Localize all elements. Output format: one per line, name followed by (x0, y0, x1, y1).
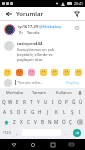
button[interactable]: Voice input (76, 88, 83, 97)
button[interactable]: X (19, 118, 24, 126)
button[interactable]: I (77, 108, 83, 116)
staticText: @hkkkabey (39, 24, 62, 30)
button[interactable]: A (2, 108, 7, 116)
button[interactable]: Filter (72, 9, 81, 18)
button[interactable]: W (8, 98, 13, 106)
button[interactable]: iyi1617-29 (0, 21, 85, 38)
staticText: P (65, 99, 68, 105)
button[interactable]: G (30, 108, 35, 116)
staticText: , (16, 130, 18, 136)
button[interactable]: Z (12, 118, 17, 126)
button[interactable]: E (15, 98, 20, 106)
staticText: tastepen444 (17, 41, 43, 47)
staticText: Ü (79, 99, 83, 105)
button[interactable]: K (53, 108, 59, 116)
button[interactable]: Like (73, 24, 81, 32)
button[interactable]: P (64, 98, 69, 106)
staticText: I (52, 99, 54, 105)
staticText: 20:41 (74, 1, 83, 6)
staticText: O (58, 99, 62, 105)
staticText: D (17, 109, 21, 115)
button[interactable]: Hide keyboard (66, 139, 77, 150)
staticText: Ğ (72, 99, 76, 105)
staticText: Tamam (32, 90, 46, 95)
button[interactable]: Shift (2, 118, 10, 126)
button[interactable]: L (61, 108, 67, 116)
button[interactable]: Ç (68, 118, 73, 126)
staticText: Kullanıcı (56, 90, 72, 95)
staticText: I (79, 109, 81, 115)
staticText: T (30, 99, 33, 105)
staticText: Ö (62, 119, 66, 125)
button[interactable]: O (57, 98, 62, 106)
staticText: iyi1617-29 (18, 24, 39, 30)
button[interactable]: cry (74, 68, 82, 76)
button[interactable]: Tamam (26, 88, 51, 97)
button[interactable]: smile (39, 68, 47, 76)
button[interactable]: R (22, 98, 27, 106)
button[interactable]: J (45, 108, 51, 116)
staticText: M (54, 119, 59, 125)
staticText: H (38, 109, 42, 115)
staticText: S (10, 109, 13, 115)
staticText: Z (13, 119, 16, 125)
button[interactable]: Back (4, 9, 13, 18)
staticText: N (48, 119, 52, 125)
staticText: Sonuçlarınızı en çok (17, 47, 55, 52)
button[interactable]: V (33, 118, 38, 126)
button[interactable]: fire (15, 68, 23, 76)
button[interactable]: B (40, 118, 45, 126)
button[interactable]: D (16, 108, 21, 116)
button[interactable]: Ş (69, 108, 75, 116)
button[interactable]: F (23, 108, 28, 116)
staticText: Yorum ekle... (18, 80, 44, 86)
button[interactable]: U (43, 98, 48, 106)
button[interactable]: C (26, 118, 31, 126)
staticText: Yorumlar (16, 10, 44, 18)
staticText: Q (2, 99, 6, 105)
button[interactable]: Recents (47, 139, 58, 150)
staticText: X (20, 119, 23, 125)
button[interactable]: H (37, 108, 43, 116)
staticText: L (63, 109, 66, 115)
button[interactable]: Merhaba (2, 88, 26, 97)
staticText: paylaşım ittar (17, 57, 43, 62)
button[interactable]: T (29, 98, 34, 106)
staticText: C (27, 119, 30, 125)
button[interactable]: Ö (61, 118, 66, 126)
button[interactable]: grin (3, 68, 11, 76)
staticText: U (44, 99, 48, 105)
button[interactable]: shock (62, 68, 70, 76)
button[interactable]: Back (8, 139, 19, 150)
button[interactable]: Enter (71, 128, 83, 137)
staticText: R (23, 99, 26, 105)
button[interactable]: N (47, 118, 52, 126)
button[interactable]: Kullanıcı (51, 88, 76, 97)
staticText: F (24, 109, 27, 115)
button[interactable]: S (9, 108, 14, 116)
button[interactable]: Ğ (71, 98, 76, 106)
button[interactable]: I (50, 98, 55, 106)
staticText: Paylaş (66, 80, 80, 86)
button[interactable]: tastepen444 (0, 38, 85, 66)
button[interactable]: Backspace (75, 118, 83, 126)
button[interactable]: , (14, 128, 20, 137)
button[interactable]: Y (36, 98, 41, 106)
button[interactable]: blossom (27, 68, 35, 76)
button[interactable]: joy (50, 68, 58, 76)
button[interactable]: M (54, 118, 59, 126)
button[interactable]: ?123 (2, 128, 12, 137)
button[interactable]: . (63, 128, 69, 137)
button[interactable]: Ü (78, 98, 83, 106)
button[interactable]: Q (2, 98, 6, 106)
button[interactable]: Home (27, 139, 38, 150)
staticText: Merhaba (6, 90, 23, 95)
staticText: G (31, 109, 35, 115)
staticText: W (8, 99, 13, 105)
staticText: Y (37, 99, 40, 105)
staticText: Ç (69, 119, 72, 125)
button[interactable]: Paylaş (65, 79, 81, 87)
staticText: V (34, 119, 37, 125)
